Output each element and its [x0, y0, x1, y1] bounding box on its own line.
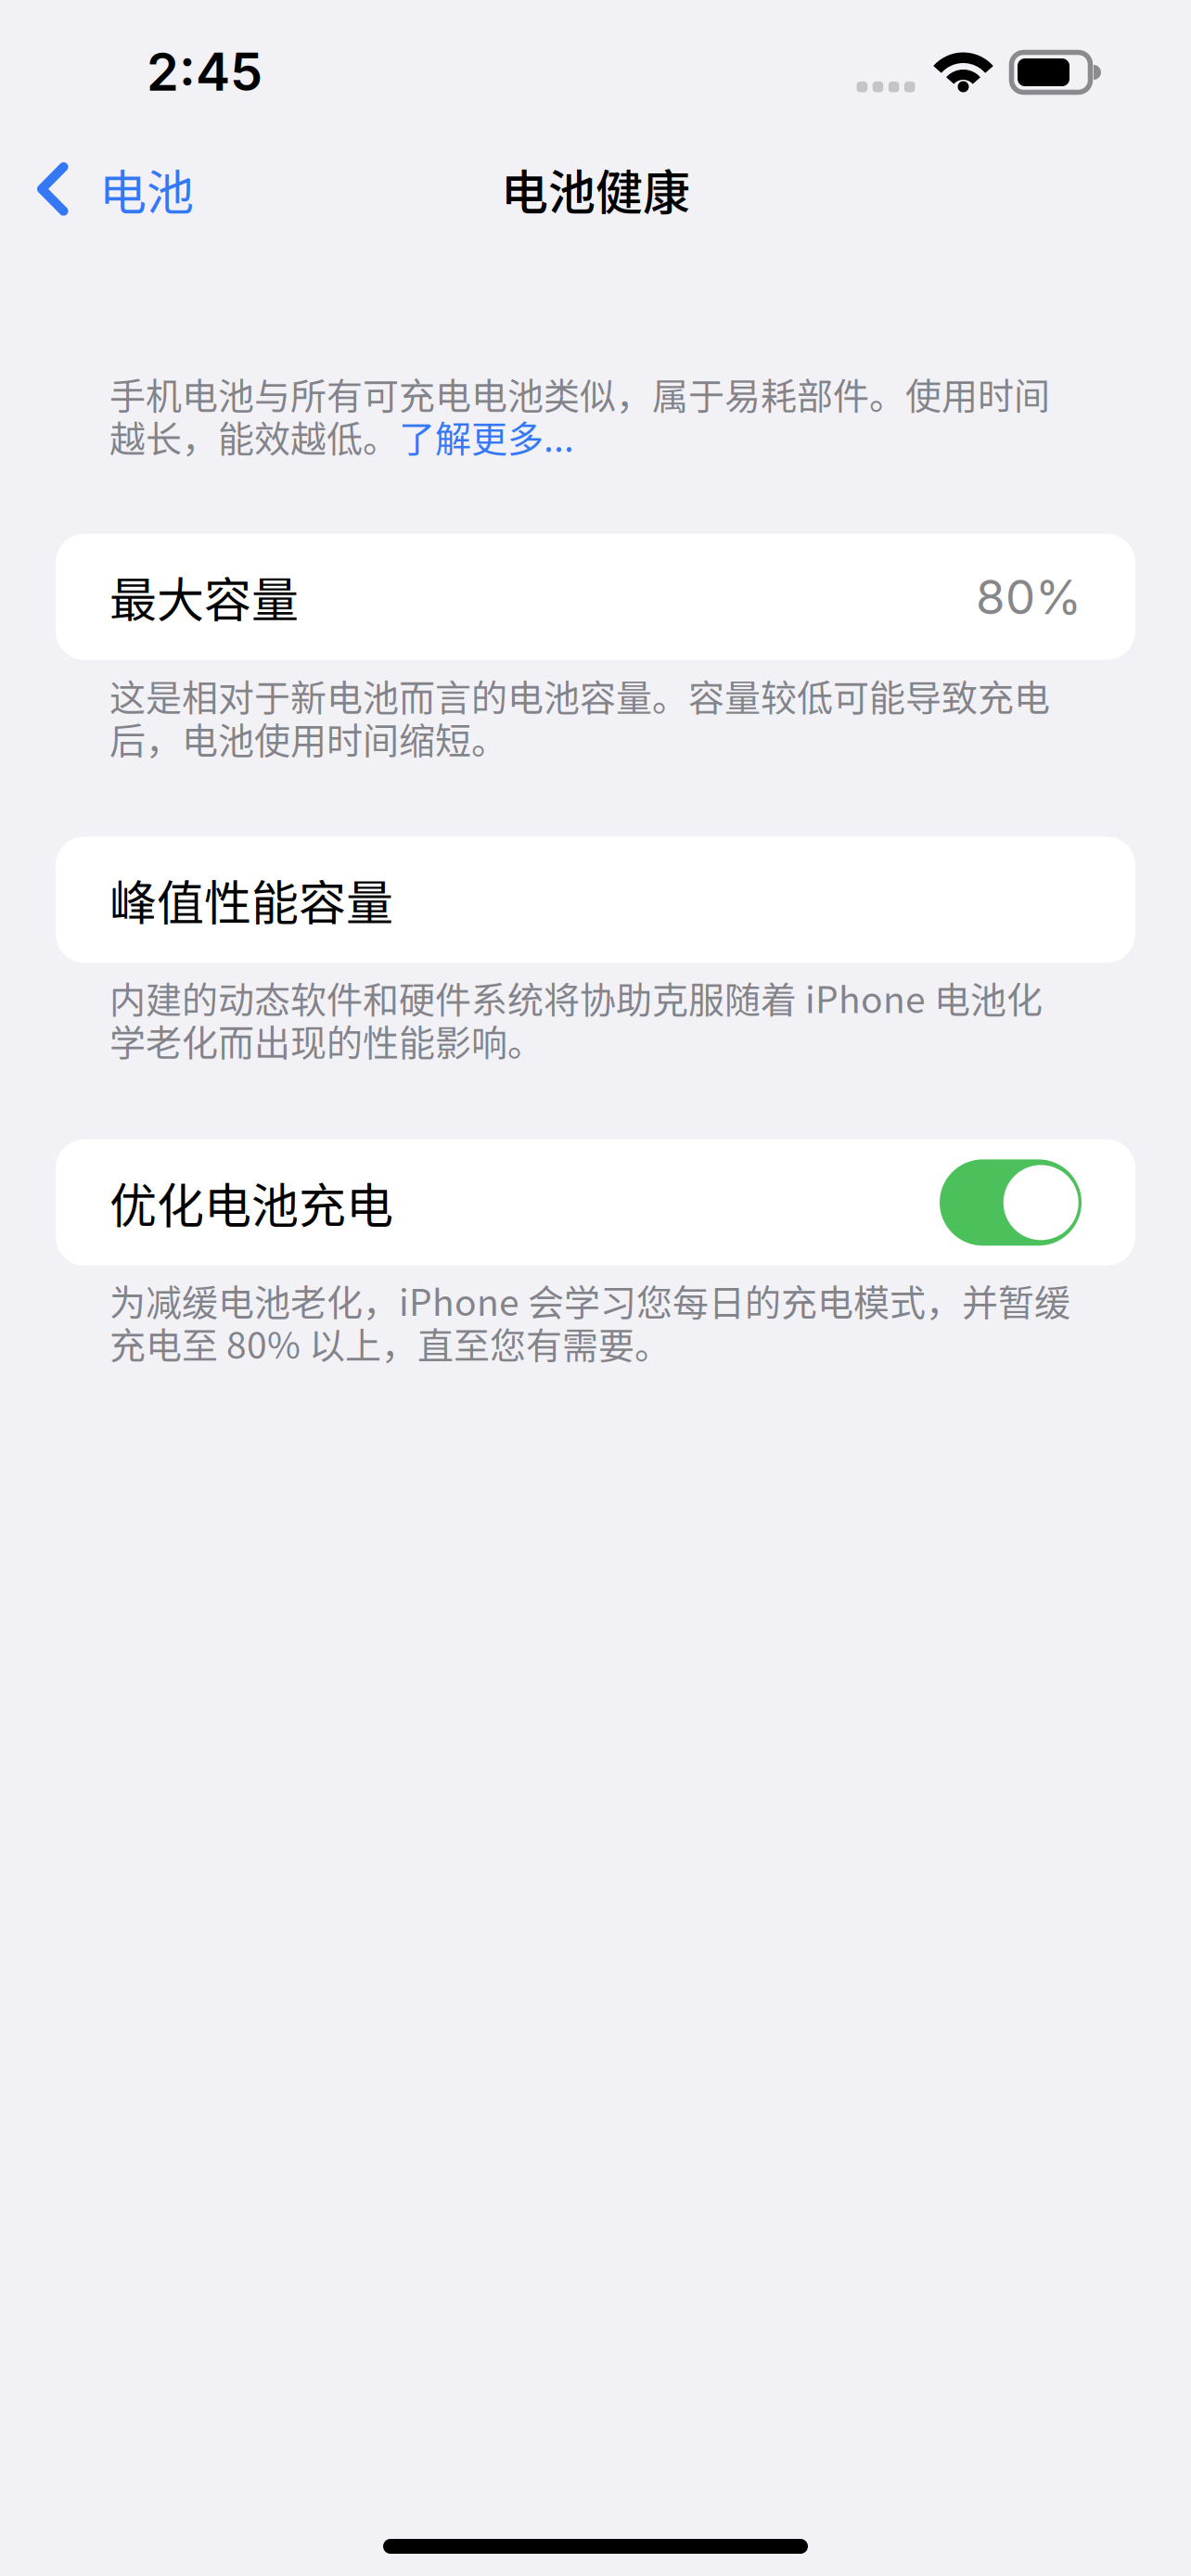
staticText: 内建的动态软件和硬件系统将协助克服随着 iPhone 电池化学老化而出现的性能影… — [109, 976, 1043, 1062]
staticText: 这是相对于新电池而言的电池容量。容量较低可能导致充电后，电池使用时间缩短。 — [109, 674, 1050, 760]
button[interactable]: 峰值性能容量 — [0, 837, 1191, 963]
staticText: 优化电池充电 — [109, 1168, 393, 1237]
staticText: 电池 — [99, 155, 194, 223]
staticText: 为减缓电池老化，iPhone 会学习您每日的充电模式，并暂缓充电至 80% 以上… — [109, 1279, 1070, 1364]
staticText: 峰值性能容量 — [109, 865, 393, 934]
staticText: 80% — [976, 568, 1082, 625]
staticText: 手机电池与所有可充电电池类似，属于易耗部件。使用时间越长，能效越低。了解更多..… — [109, 372, 1050, 458]
staticText: 2:45 — [147, 41, 263, 103]
button[interactable]: 优化电池充电 — [0, 1139, 1191, 1266]
staticText: 电池健康 — [501, 155, 690, 223]
button[interactable]: 最大容量 — [0, 534, 1191, 660]
staticText: 最大容量 — [109, 563, 299, 631]
button[interactable]: 返回电池 — [0, 138, 212, 240]
